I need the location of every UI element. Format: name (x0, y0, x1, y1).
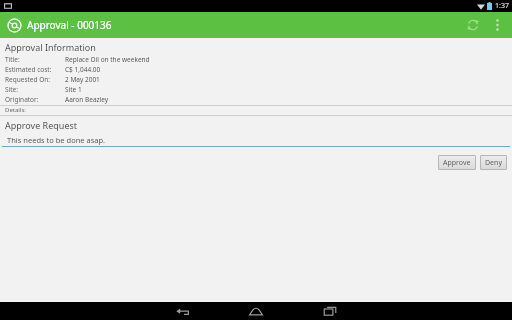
button[interactable]: This needs to be done asap. (2, 135, 510, 147)
staticText: This needs to be done asap. (7, 135, 106, 145)
staticText: Approve Request (5, 119, 78, 131)
staticText: C$ 1,044.00 (65, 65, 101, 74)
staticText: Title: (5, 55, 20, 64)
staticText: Deny (485, 158, 502, 168)
staticText: Approval - 000136 (27, 18, 112, 32)
staticText: Site: (5, 85, 18, 94)
staticText: 1:37 (495, 1, 509, 11)
staticText: Details: (5, 106, 26, 114)
button[interactable]: Recent apps (307, 302, 353, 320)
button[interactable]: Deny (480, 155, 507, 170)
staticText: Estimated cost: (5, 65, 52, 74)
button[interactable]: Approval - 000136 (8, 18, 112, 32)
staticText: Originator: (5, 95, 39, 104)
staticText: 2 May 2001 (65, 75, 100, 84)
button[interactable]: Refresh (460, 12, 486, 38)
button[interactable]: Approve (438, 155, 476, 170)
button[interactable]: Back (159, 302, 205, 320)
staticText: Aaron Beazley (65, 95, 109, 104)
staticText: Approval Information (5, 41, 96, 53)
staticText: Replace Oil on the weekend (65, 55, 150, 64)
button[interactable]: More options (486, 14, 508, 36)
staticText: Requested On: (5, 75, 51, 84)
staticText: Approve (443, 158, 471, 168)
staticText: Site 1 (65, 85, 82, 94)
button[interactable]: Home (233, 302, 279, 320)
